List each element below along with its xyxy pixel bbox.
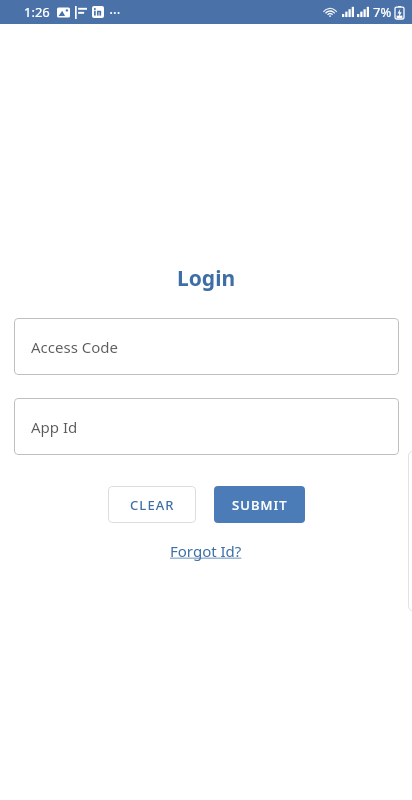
staticText: Forgot Id?: [170, 541, 242, 561]
staticText: SUBMIT: [232, 496, 288, 514]
staticText: Login: [177, 264, 236, 293]
button[interactable]: SUBMIT: [214, 486, 305, 523]
staticText: 1:26: [24, 3, 50, 21]
button[interactable]: App Id: [14, 398, 399, 455]
staticText: App Id: [31, 417, 78, 437]
staticText: 7%: [373, 3, 392, 21]
button[interactable]: CLEAR: [108, 486, 196, 523]
button[interactable]: Forgot Id?: [164, 538, 248, 564]
staticText: Access Code: [31, 337, 118, 357]
staticText: CLEAR: [130, 496, 175, 514]
button[interactable]: Access Code: [14, 318, 399, 375]
